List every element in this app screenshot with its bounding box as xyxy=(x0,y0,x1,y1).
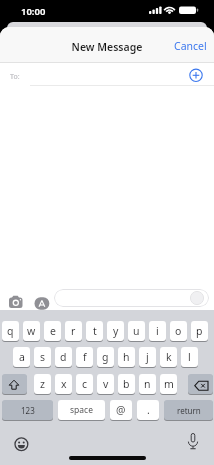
button[interactable] xyxy=(54,289,209,307)
staticText: Cancel xyxy=(174,39,207,53)
staticText: b xyxy=(123,377,130,391)
staticText: 10:00 xyxy=(21,5,46,18)
button[interactable]: space xyxy=(58,400,105,420)
button[interactable]: j xyxy=(139,347,156,367)
staticText: z xyxy=(40,377,45,391)
staticText: u xyxy=(133,324,140,338)
button[interactable]: a xyxy=(13,347,30,367)
button[interactable]: e xyxy=(44,321,61,341)
button[interactable] xyxy=(14,437,29,452)
button[interactable]: t xyxy=(86,321,103,341)
button[interactable] xyxy=(2,374,27,394)
staticText: space xyxy=(70,404,93,416)
staticText: a xyxy=(19,350,25,364)
button[interactable]: f xyxy=(76,347,93,367)
button[interactable]: x xyxy=(55,374,72,394)
button[interactable]: l xyxy=(181,347,198,367)
button[interactable]: s xyxy=(34,347,51,367)
staticText: k xyxy=(166,350,172,364)
staticText: v xyxy=(103,377,109,391)
button[interactable]: y xyxy=(107,321,124,341)
staticText: r xyxy=(71,324,76,338)
staticText: . xyxy=(147,403,150,417)
staticText: d xyxy=(60,350,67,364)
staticText: return xyxy=(177,405,201,416)
staticText: h xyxy=(123,350,130,364)
button[interactable]: Cancel xyxy=(171,37,207,54)
button[interactable]: u xyxy=(128,321,145,341)
button[interactable]: o xyxy=(170,321,187,341)
button[interactable]: 123 xyxy=(2,400,53,420)
button[interactable]: n xyxy=(139,374,156,394)
button[interactable] xyxy=(34,297,50,310)
staticText: o xyxy=(175,324,182,338)
staticText: q xyxy=(7,324,14,338)
button[interactable]: v xyxy=(97,374,114,394)
staticText: y xyxy=(113,324,119,338)
staticText: t xyxy=(93,324,97,338)
button[interactable] xyxy=(188,374,213,394)
staticText: New Message xyxy=(0,40,214,54)
staticText: n xyxy=(144,377,151,391)
staticText: 123 xyxy=(21,405,35,416)
button[interactable]: g xyxy=(97,347,114,367)
button[interactable]: k xyxy=(160,347,177,367)
button[interactable]: w xyxy=(23,321,40,341)
staticText: To: xyxy=(10,72,20,82)
button[interactable]: h xyxy=(118,347,135,367)
button[interactable]: d xyxy=(55,347,72,367)
staticText: @ xyxy=(116,403,126,417)
button[interactable]: p xyxy=(191,321,208,341)
button[interactable]: . xyxy=(137,400,159,420)
button[interactable]: @ xyxy=(110,400,132,420)
button[interactable]: r xyxy=(65,321,82,341)
button[interactable]: m xyxy=(160,374,177,394)
staticText: x xyxy=(61,377,67,391)
staticText: m xyxy=(164,377,174,391)
staticText: c xyxy=(82,377,88,391)
staticText: e xyxy=(50,324,56,338)
staticText: s xyxy=(40,350,46,364)
button[interactable]: q xyxy=(2,321,19,341)
staticText: w xyxy=(27,324,36,338)
button[interactable] xyxy=(186,65,206,85)
staticText: f xyxy=(83,350,87,364)
staticText: j xyxy=(146,350,149,364)
button[interactable]: b xyxy=(118,374,135,394)
staticText: i xyxy=(156,324,159,338)
button[interactable]: c xyxy=(76,374,93,394)
button[interactable] xyxy=(186,431,200,451)
button[interactable]: z xyxy=(34,374,51,394)
button[interactable] xyxy=(6,294,26,310)
staticText: g xyxy=(102,350,109,364)
staticText: l xyxy=(188,350,191,364)
staticText: p xyxy=(196,324,203,338)
button[interactable]: return xyxy=(164,400,213,420)
button[interactable]: i xyxy=(149,321,166,341)
